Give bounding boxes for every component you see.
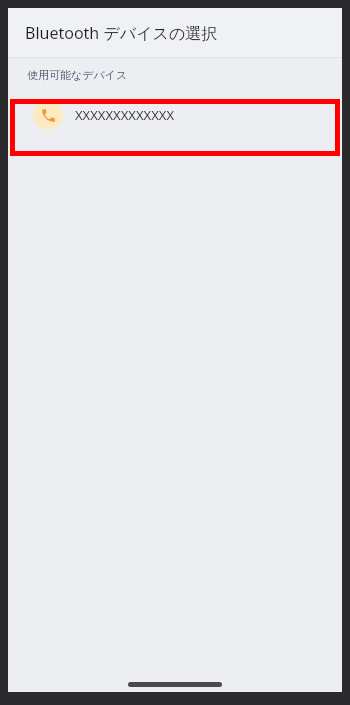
staticText: 使用可能なデバイス [27,68,128,82]
button[interactable]: XXXXXXXXXXXXX [8,91,342,139]
staticText: Bluetooth デバイスの選択 [25,22,218,44]
staticText: XXXXXXXXXXXXX [75,106,175,124]
